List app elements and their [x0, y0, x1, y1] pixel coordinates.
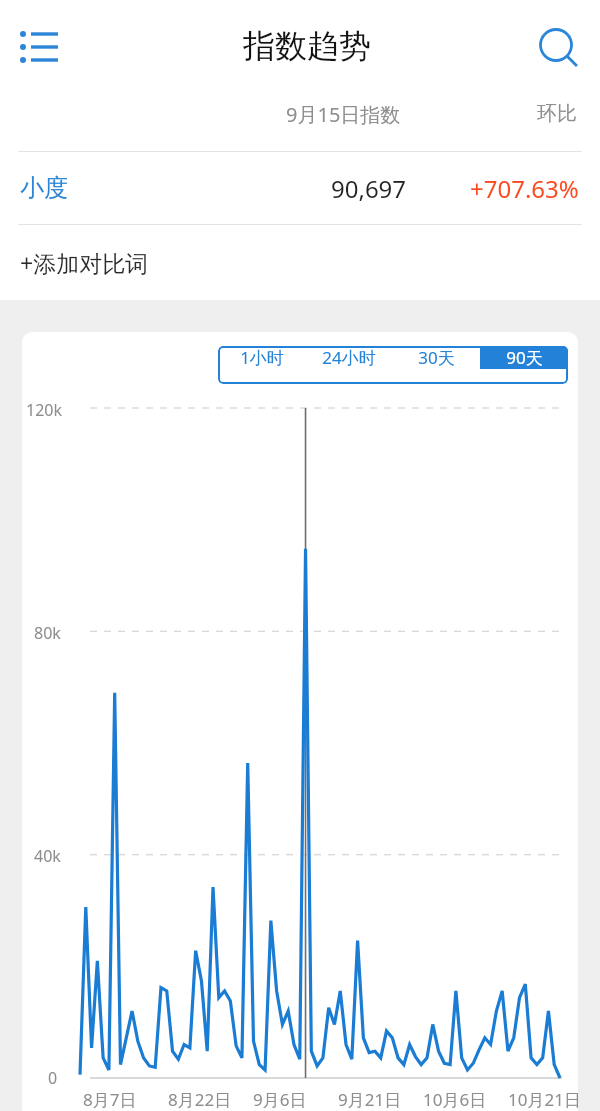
staticText: 9月21日 [338, 1088, 402, 1111]
staticText: 9月15日指数 [286, 101, 401, 128]
button[interactable]: 小度 [0, 152, 600, 224]
staticText: 30天 [418, 346, 455, 369]
staticText: 9月6日 [253, 1088, 307, 1111]
staticText: 指数趋势 [243, 26, 371, 66]
staticText: 90,697 [331, 172, 407, 205]
staticText: 80k [34, 622, 61, 644]
staticText: 8月22日 [168, 1088, 232, 1111]
button[interactable]: 1小时 [218, 346, 305, 369]
button[interactable]: Menu [16, 26, 64, 70]
button[interactable]: 24小时 [305, 346, 392, 369]
button[interactable]: Search [533, 22, 583, 72]
staticText: 8月7日 [83, 1088, 137, 1111]
staticText: 40k [34, 845, 61, 867]
staticText: 90天 [506, 346, 543, 369]
staticText: 0 [48, 1067, 58, 1089]
staticText: 小度 [20, 173, 68, 203]
staticText: 10月6日 [423, 1088, 487, 1111]
staticText: 24小时 [322, 346, 376, 369]
button[interactable]: +添加对比词 [0, 225, 600, 299]
staticText: +707.63% [470, 172, 579, 205]
staticText: 120k [26, 399, 63, 421]
button[interactable]: 30天 [392, 346, 480, 369]
staticText: 10月21日 [508, 1088, 578, 1111]
button[interactable]: 90天 [480, 346, 568, 369]
staticText: 1小时 [240, 346, 284, 369]
staticText: 环比 [537, 101, 577, 126]
staticText: +添加对比词 [20, 247, 149, 278]
